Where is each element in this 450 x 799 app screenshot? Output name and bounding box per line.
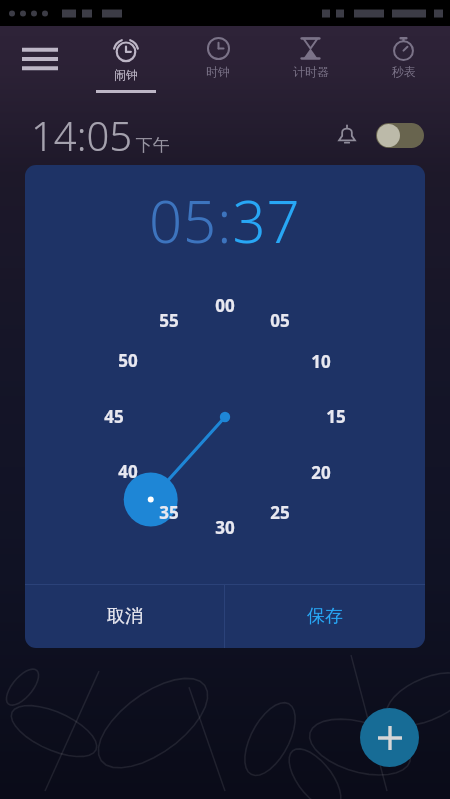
staticText: 05 [270, 309, 290, 332]
staticText: 10 [311, 350, 331, 373]
staticText: 秒表 [392, 64, 416, 79]
button[interactable]: 取消 [25, 585, 224, 648]
button[interactable]: 秒表 [357, 26, 450, 105]
button[interactable]: Toggle alarm [372, 114, 428, 156]
button[interactable]: 时钟 [172, 26, 264, 105]
staticText: 05:37 [149, 181, 301, 260]
staticText: 50 [118, 349, 138, 372]
staticText: 闹钟 [114, 67, 138, 82]
button[interactable]: Add alarm [360, 708, 419, 767]
button[interactable]: Menu [0, 26, 80, 105]
staticText: 计时器 [293, 64, 329, 79]
staticText: 取消 [107, 605, 143, 628]
staticText: 时钟 [206, 64, 230, 79]
staticText: 40 [118, 460, 138, 483]
button[interactable]: 计时器 [264, 26, 357, 105]
staticText: 30 [215, 516, 235, 539]
staticText: 14:05 下午 [31, 108, 170, 162]
staticText: 35 [159, 501, 179, 524]
staticText: 00 [215, 294, 235, 317]
button[interactable]: Alarm bell [326, 114, 368, 156]
staticText: 45 [104, 405, 124, 428]
staticText: 20 [311, 461, 331, 484]
button[interactable]: 闹钟 [80, 26, 172, 105]
staticText: 25 [270, 501, 290, 524]
button[interactable]: 00 [25, 275, 425, 584]
staticText: 保存 [307, 605, 343, 628]
button[interactable]: 保存 [225, 585, 425, 648]
staticText: 55 [159, 309, 179, 332]
staticText: 15 [326, 405, 346, 428]
